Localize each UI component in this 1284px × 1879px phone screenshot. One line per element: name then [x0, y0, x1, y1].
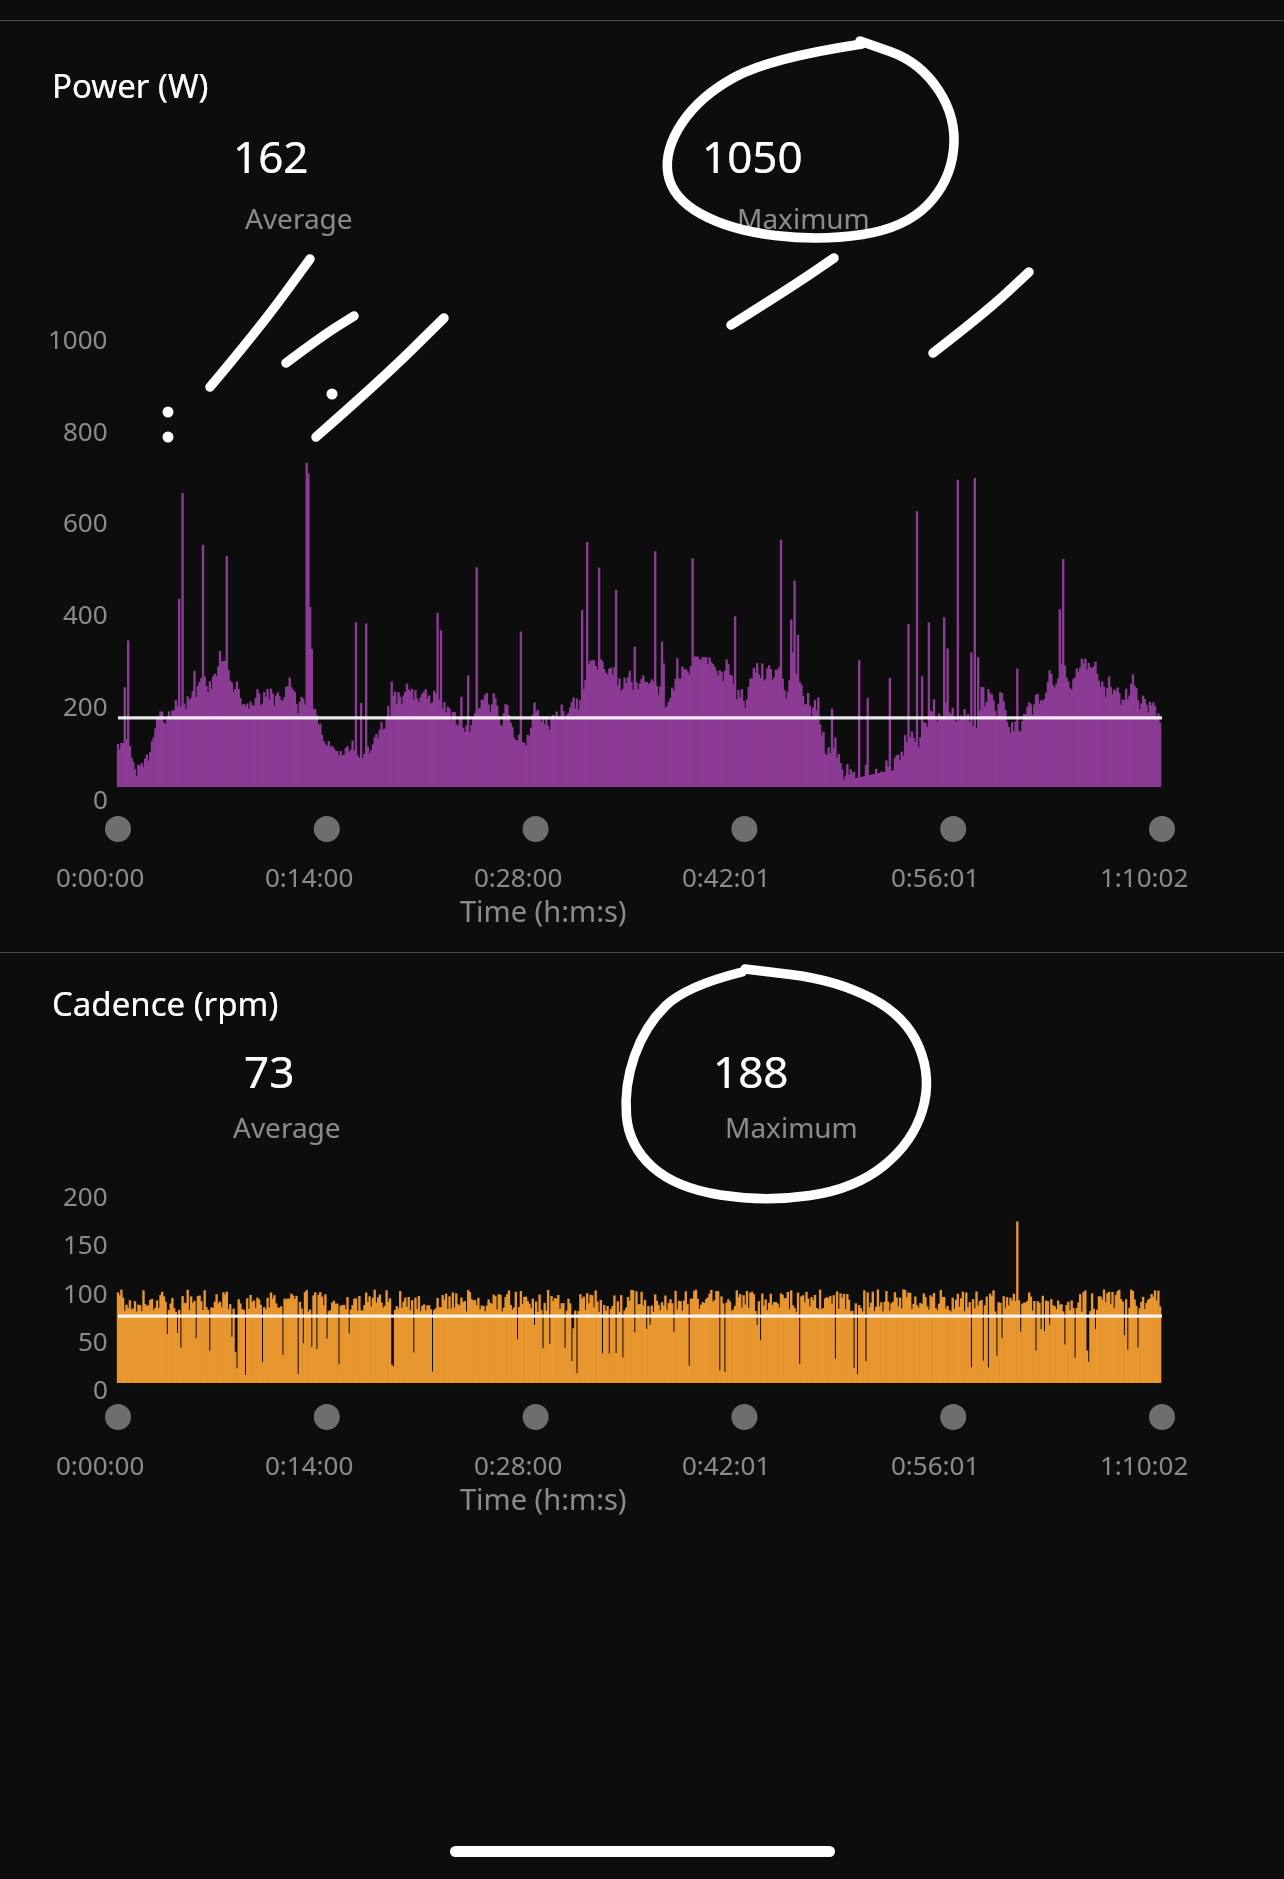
staticText: Maximum — [737, 199, 870, 237]
staticText: 600 — [63, 504, 108, 539]
other: Handwritten annotations — [0, 0, 1284, 1879]
staticText: 200 — [63, 1178, 108, 1213]
staticText: Time (h:m:s) — [460, 891, 627, 930]
staticText: 0:56:01 — [891, 859, 980, 894]
staticText: 0:56:01 — [891, 1447, 980, 1482]
staticText: 0:00:00 — [56, 1447, 145, 1482]
staticText: Cadence (rpm) — [52, 981, 279, 1026]
staticText: Maximum — [725, 1108, 858, 1146]
staticText: 50 — [78, 1323, 108, 1358]
staticText: Average — [233, 1108, 341, 1146]
staticText: Power (W) — [52, 63, 209, 108]
staticText: 150 — [63, 1226, 108, 1261]
staticText: 0:14:00 — [265, 1447, 354, 1482]
staticText: 800 — [63, 413, 108, 448]
staticText: 0 — [93, 781, 108, 816]
staticText: 188 — [713, 1041, 789, 1101]
staticText: 162 — [233, 126, 309, 186]
staticText: 0:28:00 — [474, 1447, 563, 1482]
staticText: 0:00:00 — [56, 859, 145, 894]
staticText: Average — [245, 199, 353, 237]
staticText: 73 — [244, 1041, 295, 1101]
button[interactable]: Cadence (rpm) — [0, 953, 1284, 1673]
button[interactable]: Power (W) — [0, 21, 1284, 952]
staticText: 0:28:00 — [474, 859, 563, 894]
staticText: 100 — [63, 1275, 108, 1310]
staticText: 1000 — [48, 321, 108, 356]
staticText: 1:10:02 — [1100, 1447, 1189, 1482]
staticText: 0:42:01 — [682, 859, 771, 894]
staticText: Time (h:m:s) — [460, 1479, 627, 1518]
staticText: 200 — [63, 688, 108, 723]
staticText: 1:10:02 — [1100, 859, 1189, 894]
staticText: 0 — [93, 1371, 108, 1406]
staticText: 0:42:01 — [682, 1447, 771, 1482]
staticText: 0:14:00 — [265, 859, 354, 894]
staticText: 400 — [63, 596, 108, 631]
staticText: 1050 — [702, 126, 803, 186]
